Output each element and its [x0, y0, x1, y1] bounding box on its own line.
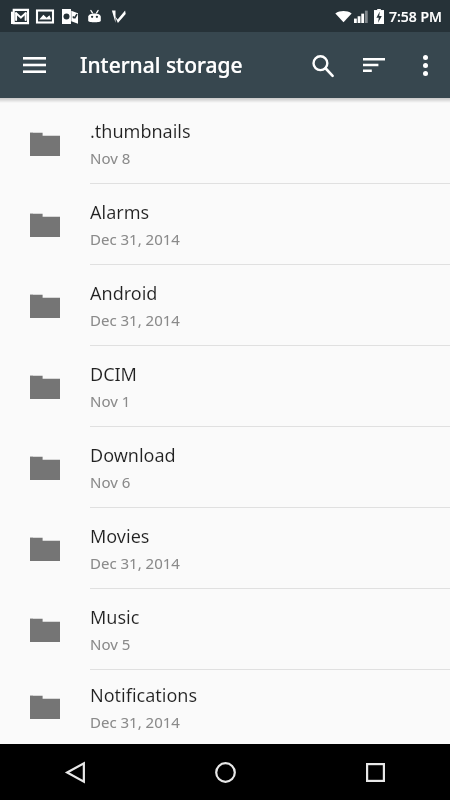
staticText: Notifications — [90, 683, 198, 708]
staticText: Music — [90, 605, 140, 630]
button[interactable]: Home — [150, 744, 300, 800]
button[interactable]: Open navigation drawer — [10, 41, 58, 89]
staticText: Nov 1 — [90, 391, 131, 411]
staticText: Movies — [90, 524, 150, 549]
button[interactable]: Android — [0, 265, 450, 346]
button[interactable]: DCIM — [0, 346, 450, 427]
staticText: Alarms — [90, 200, 150, 225]
button[interactable]: .thumbnails — [0, 103, 450, 184]
staticText: Android — [90, 281, 158, 306]
staticText: Nov 5 — [90, 634, 131, 654]
button[interactable]: More options — [400, 40, 450, 90]
staticText: Nov 8 — [90, 148, 131, 168]
staticText: Nov 6 — [90, 472, 131, 492]
button[interactable]: Movies — [0, 508, 450, 589]
staticText: Dec 31, 2014 — [90, 310, 180, 330]
button[interactable]: Recent apps — [300, 744, 450, 800]
staticText: Download — [90, 443, 176, 468]
staticText: .thumbnails — [90, 119, 191, 144]
button[interactable]: Notifications — [0, 670, 450, 744]
button[interactable]: Alarms — [0, 184, 450, 265]
staticText: DCIM — [90, 362, 137, 387]
button[interactable]: Music — [0, 589, 450, 670]
button[interactable]: Sort — [348, 39, 400, 91]
staticText: Dec 31, 2014 — [90, 712, 180, 732]
staticText: Dec 31, 2014 — [90, 229, 180, 249]
button[interactable]: Download — [0, 427, 450, 508]
staticText: 7:58 PM — [389, 7, 442, 26]
staticText: Internal storage — [80, 51, 243, 80]
staticText: Dec 31, 2014 — [90, 553, 180, 573]
button[interactable]: Search — [296, 39, 348, 91]
button[interactable]: Back — [0, 744, 150, 800]
